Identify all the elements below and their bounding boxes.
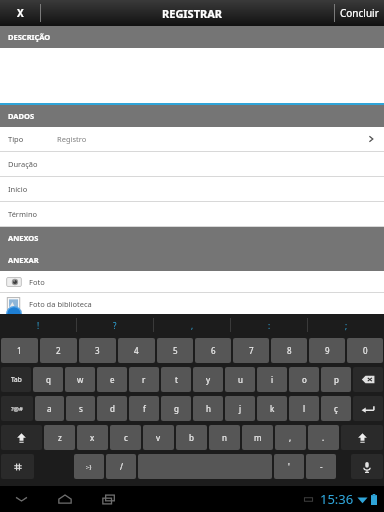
button[interactable]: Enter (353, 396, 383, 421)
button[interactable]: , (154, 314, 230, 336)
staticText: z (58, 432, 62, 443)
button[interactable]: t (161, 367, 191, 392)
staticText: DADOS (8, 111, 35, 121)
button[interactable]: Término (0, 202, 384, 227)
button[interactable]: ç (321, 396, 351, 421)
button[interactable]: Shift (1, 425, 42, 450)
button[interactable]: l (289, 396, 319, 421)
button[interactable]: 7 (233, 338, 269, 363)
staticText: 5 (173, 345, 178, 356)
staticText: m (254, 432, 262, 443)
staticText: :-) (86, 463, 92, 471)
staticText: Foto (29, 277, 45, 287)
staticText: x (90, 432, 95, 443)
button[interactable]: ! (0, 314, 76, 336)
button[interactable]: Foto da biblioteca (0, 293, 384, 314)
staticText: w (77, 374, 84, 385)
staticText: Tipo (8, 134, 24, 144)
button[interactable]: Início (54, 488, 76, 510)
button[interactable]: 6 (195, 338, 231, 363)
button[interactable]: :-) (74, 454, 104, 479)
staticText: a (47, 403, 52, 414)
button[interactable]: ?@# (1, 396, 33, 421)
button[interactable]: r (129, 367, 159, 392)
button[interactable]: Início (0, 177, 384, 202)
button[interactable]: ? (77, 314, 153, 336)
button[interactable]: v (143, 425, 174, 450)
button[interactable]: Recentes (98, 488, 120, 510)
button[interactable]: w (65, 367, 95, 392)
button[interactable]: z (44, 425, 75, 450)
button[interactable]: i (257, 367, 287, 392)
button[interactable]: 1 (1, 338, 38, 363)
button[interactable]: s (66, 396, 95, 421)
button[interactable]: c (110, 425, 141, 450)
button[interactable]: h (193, 396, 223, 421)
staticText: ? (113, 320, 117, 331)
button[interactable]: m (242, 425, 273, 450)
button[interactable]: 2 (40, 338, 77, 363)
button[interactable]: a (35, 396, 64, 421)
staticText: X (17, 6, 24, 20)
staticText: ç (334, 403, 338, 414)
button[interactable]: Ocultar teclado (10, 488, 32, 510)
staticText: q (46, 374, 51, 385)
button[interactable]: 8 (271, 338, 307, 363)
button[interactable]: 5 (157, 338, 193, 363)
staticText: Tab (11, 375, 22, 384)
staticText: - (320, 461, 323, 472)
staticText: b (189, 432, 194, 443)
button[interactable]: Duração (0, 152, 384, 177)
staticText: k (270, 403, 275, 414)
button[interactable]: Tipo (0, 127, 384, 152)
button[interactable]: f (129, 396, 159, 421)
button[interactable]: k (257, 396, 287, 421)
button[interactable]: d (97, 396, 127, 421)
staticText: 4 (134, 345, 139, 356)
button[interactable]: Concluir (335, 0, 384, 26)
button[interactable]: y (193, 367, 223, 392)
staticText: y (206, 374, 211, 385)
staticText: u (238, 374, 243, 385)
staticText: s (79, 403, 83, 414)
staticText: ?@# (11, 405, 23, 413)
button[interactable]: q (33, 367, 63, 392)
button[interactable]: 9 (309, 338, 345, 363)
button[interactable]: ' (274, 454, 304, 479)
button[interactable]: g (161, 396, 191, 421)
button[interactable]: 0 (347, 338, 383, 363)
button[interactable]: Tab (1, 367, 31, 392)
button[interactable]: Shift (341, 425, 383, 450)
button[interactable]: u (225, 367, 255, 392)
button[interactable]: - (306, 454, 336, 479)
button[interactable]: 3 (79, 338, 116, 363)
staticText: g (174, 403, 179, 414)
button[interactable]: o (289, 367, 319, 392)
button[interactable]: ; (308, 314, 384, 336)
button[interactable]: / (106, 454, 136, 479)
button[interactable]: e (97, 367, 127, 392)
button[interactable]: x (77, 425, 108, 450)
staticText: d (110, 403, 115, 414)
button[interactable]: n (209, 425, 240, 450)
button[interactable]: , (275, 425, 306, 450)
staticText: ! (37, 320, 40, 331)
button[interactable]: : (231, 314, 307, 336)
button[interactable]: 4 (118, 338, 155, 363)
button[interactable]: Fechar (0, 0, 40, 26)
staticText: , (289, 432, 292, 443)
button[interactable]: j (225, 396, 255, 421)
staticText: h (206, 403, 211, 414)
button[interactable]: Foto (0, 271, 384, 293)
staticText: r (142, 374, 146, 385)
button[interactable]: Backspace (353, 367, 383, 392)
staticText: 6 (211, 345, 216, 356)
button[interactable]: b (176, 425, 207, 450)
button[interactable]: Teclado (1, 454, 34, 479)
staticText: ' (288, 461, 290, 472)
button[interactable]: . (308, 425, 339, 450)
button[interactable]: p (321, 367, 351, 392)
button[interactable]: Microfone (351, 454, 383, 479)
